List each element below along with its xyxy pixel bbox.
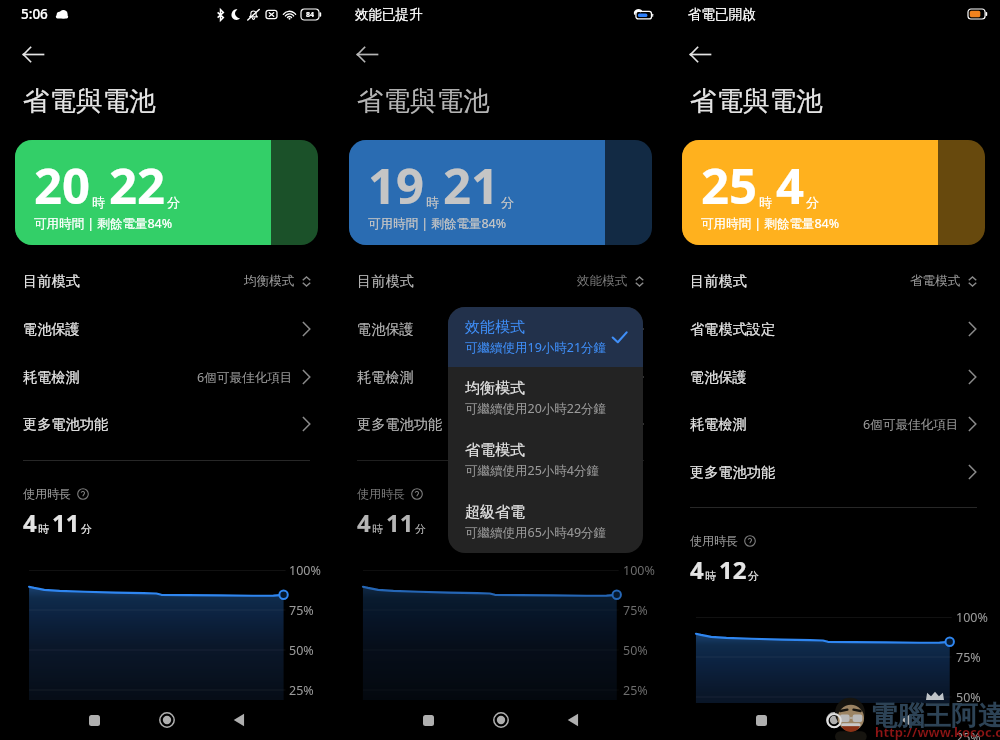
staticText: 電腦王阿達 bbox=[870, 699, 1000, 733]
staticText: 可繼續使用25小時4分鐘 bbox=[465, 462, 599, 479]
button[interactable]: 電池保護 bbox=[0, 305, 334, 353]
staticText: 耗電檢測 bbox=[357, 368, 414, 386]
button[interactable]: Recents bbox=[406, 700, 450, 740]
staticText: 均衡模式 bbox=[465, 379, 525, 398]
staticText: 可繼續使用65小時49分鐘 bbox=[465, 524, 607, 541]
staticText: 電池保護 bbox=[23, 320, 80, 338]
staticText: 耗電檢測 bbox=[690, 415, 747, 433]
staticText: 使用時長 bbox=[357, 486, 405, 501]
staticText: http://www.kococ.com.tw bbox=[875, 723, 1000, 740]
staticText: 省電已開啟 bbox=[688, 6, 756, 23]
staticText: 時 bbox=[38, 522, 49, 536]
staticText: 分 bbox=[415, 522, 426, 536]
staticText: 75% bbox=[289, 602, 314, 619]
staticText: 75% bbox=[956, 649, 981, 666]
button[interactable]: Recents bbox=[739, 700, 783, 740]
staticText: 省電模式 bbox=[465, 441, 525, 460]
staticText: 時 bbox=[426, 194, 439, 210]
staticText: 分 bbox=[501, 194, 514, 210]
staticText: 時 bbox=[92, 194, 105, 210]
button[interactable]: 目前模式 bbox=[0, 257, 334, 305]
staticText: 使用時長 bbox=[690, 533, 738, 548]
staticText: 效能已提升 bbox=[355, 6, 423, 23]
button[interactable]: Home bbox=[812, 700, 856, 740]
staticText: 省電模式 bbox=[910, 273, 961, 289]
staticText: 可用時間 | 剩餘電量84% bbox=[701, 215, 840, 232]
staticText: 11 bbox=[386, 506, 414, 539]
staticText: 可繼續使用19小時21分鐘 bbox=[465, 339, 607, 356]
staticText: 均衡模式 bbox=[244, 273, 295, 289]
button[interactable]: 均衡模式 bbox=[448, 367, 643, 429]
staticText: 100% bbox=[956, 609, 988, 626]
button[interactable]: 目前模式 bbox=[667, 257, 1000, 305]
staticText: 省電模式設定 bbox=[690, 320, 776, 338]
staticText: 時 bbox=[372, 522, 383, 536]
staticText: 使用時長 bbox=[23, 486, 71, 501]
button[interactable]: 電池保護 bbox=[667, 353, 1000, 401]
staticText: 75% bbox=[623, 602, 648, 619]
button[interactable]: Back bbox=[349, 36, 385, 72]
staticText: 目前模式 bbox=[357, 272, 414, 290]
button[interactable]: Back bbox=[551, 700, 595, 740]
staticText: 12 bbox=[719, 553, 747, 586]
button[interactable]: 更多電池功能 bbox=[667, 448, 1000, 496]
staticText: 目前模式 bbox=[23, 272, 80, 290]
staticText: 電池保護 bbox=[357, 320, 414, 338]
button[interactable]: 耗電檢測 bbox=[0, 353, 334, 401]
staticText: 更多電池功能 bbox=[357, 415, 443, 433]
button[interactable]: Back bbox=[884, 700, 928, 740]
button[interactable]: 目前模式 bbox=[334, 257, 667, 305]
staticText: 6個可最佳化項目 bbox=[197, 369, 293, 386]
button[interactable]: 更多電池功能 bbox=[334, 400, 667, 448]
staticText: 22 bbox=[109, 152, 166, 219]
button[interactable]: 19 bbox=[349, 140, 652, 245]
staticText: 6個可最佳化項目 bbox=[863, 416, 959, 433]
staticText: 電池保護 bbox=[690, 368, 747, 386]
staticText: 可用時間 | 剩餘電量84% bbox=[368, 215, 507, 232]
staticText: 時 bbox=[705, 569, 716, 583]
button[interactable]: Recents bbox=[72, 700, 116, 740]
staticText: 效能模式 bbox=[465, 318, 525, 337]
staticText: 4 bbox=[23, 506, 37, 539]
staticText: 50% bbox=[623, 642, 648, 659]
button[interactable]: Back bbox=[15, 36, 51, 72]
button[interactable]: 省電模式 bbox=[448, 429, 643, 491]
staticText: 25% bbox=[289, 682, 314, 699]
staticText: 效能模式 bbox=[577, 273, 628, 289]
staticText: 21 bbox=[443, 152, 500, 219]
staticText: 100% bbox=[289, 562, 321, 579]
button[interactable]: Back bbox=[217, 700, 261, 740]
button[interactable]: 效能模式 bbox=[448, 307, 643, 367]
staticText: 分 bbox=[806, 194, 819, 210]
staticText: 4 bbox=[776, 152, 805, 219]
button[interactable]: 20 bbox=[15, 140, 318, 245]
staticText: 省電與電池 bbox=[690, 84, 823, 117]
button[interactable]: 25 bbox=[682, 140, 985, 245]
button[interactable]: 更多電池功能 bbox=[0, 400, 334, 448]
staticText: 省電與電池 bbox=[357, 84, 490, 117]
staticText: 更多電池功能 bbox=[23, 415, 109, 433]
staticText: 11 bbox=[52, 506, 80, 539]
button[interactable]: Home bbox=[145, 700, 189, 740]
button[interactable]: 電池保護 bbox=[334, 305, 667, 353]
button[interactable]: 耗電檢測 bbox=[334, 353, 667, 401]
staticText: 19 bbox=[368, 152, 425, 219]
button[interactable]: 超級省電 bbox=[448, 491, 643, 553]
staticText: 50% bbox=[289, 642, 314, 659]
staticText: 分 bbox=[748, 569, 759, 583]
staticText: 84 bbox=[306, 10, 315, 20]
staticText: 耗電檢測 bbox=[23, 368, 80, 386]
staticText: 5:06 bbox=[21, 5, 48, 23]
staticText: 分 bbox=[81, 522, 92, 536]
staticText: 更多電池功能 bbox=[690, 463, 776, 481]
button[interactable]: Home bbox=[479, 700, 523, 740]
button[interactable]: 省電模式設定 bbox=[667, 305, 1000, 353]
staticText: 25% bbox=[956, 729, 981, 740]
staticText: 分 bbox=[167, 194, 180, 210]
staticText: 4 bbox=[357, 506, 371, 539]
button[interactable]: Back bbox=[682, 36, 718, 72]
button[interactable]: 耗電檢測 bbox=[667, 400, 1000, 448]
staticText: 25 bbox=[701, 152, 758, 219]
staticText: 25% bbox=[623, 682, 648, 699]
